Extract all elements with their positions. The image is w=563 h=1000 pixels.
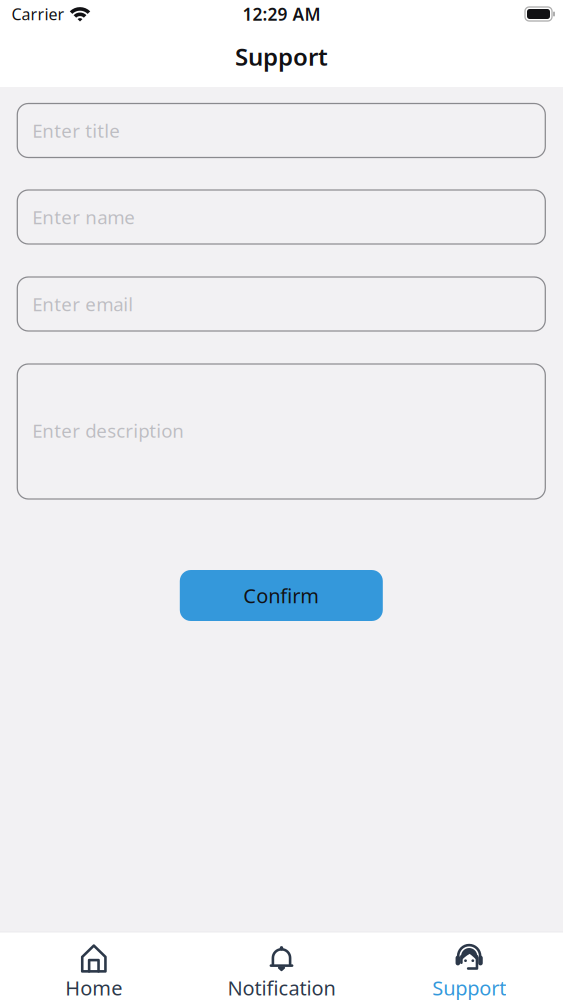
button[interactable]: Enter title xyxy=(17,103,545,157)
button[interactable]: Home xyxy=(0,932,188,1000)
staticText: Home xyxy=(65,974,122,1000)
staticText: Confirm xyxy=(243,582,319,609)
staticText: 12:29 AM xyxy=(242,2,320,25)
button[interactable]: Enter name xyxy=(17,190,545,244)
button[interactable]: Enter description xyxy=(17,364,545,499)
staticText: Notification xyxy=(227,974,335,1000)
staticText: Carrier xyxy=(11,3,64,25)
staticText: Enter title xyxy=(32,118,120,143)
staticText: Support xyxy=(432,974,506,1000)
button[interactable]: Enter email xyxy=(17,277,545,331)
button[interactable]: Notification xyxy=(188,932,375,1000)
button[interactable]: Confirm xyxy=(180,570,383,621)
staticText: Enter name xyxy=(32,205,135,229)
staticText: Support xyxy=(235,40,328,72)
button[interactable]: Support xyxy=(375,932,563,1000)
staticText: Enter description xyxy=(32,418,184,443)
staticText: Enter email xyxy=(32,292,133,316)
